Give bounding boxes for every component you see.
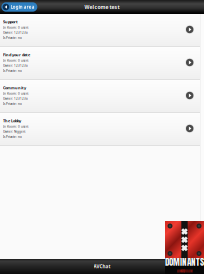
staticText: Login area (11, 4, 35, 10)
staticText: Welcome test (84, 3, 119, 10)
staticText: Owner: 123123a (3, 97, 28, 101)
staticText: Support (3, 19, 18, 24)
button[interactable]: The Lobby (0, 113, 200, 146)
button[interactable]: Find your date (0, 47, 200, 80)
staticText: In Room: 0 users (3, 59, 28, 63)
button[interactable]: Support (0, 14, 200, 47)
staticText: In Room: 0 users (3, 92, 28, 96)
staticText: In Room: 0 users (3, 125, 28, 129)
staticText: DOMINANTS (165, 255, 204, 269)
staticText: AVChat (93, 263, 110, 270)
button[interactable]: Community (0, 80, 200, 113)
staticText: The Lobby (3, 118, 21, 123)
staticText: In Room: 0 users (3, 26, 28, 30)
staticText: Owner: 123123a (3, 31, 28, 35)
staticText: Is Private: no (3, 36, 22, 40)
staticText: AMSTERDAM (177, 269, 192, 273)
staticText: Owner: Niggers (3, 130, 25, 134)
staticText: Is Private: no (3, 135, 22, 139)
staticText: Owner: 123123a (3, 64, 28, 68)
button[interactable]: Login area (1, 2, 37, 12)
staticText: Is Private: no (3, 69, 22, 73)
staticText: Find your date (3, 52, 30, 57)
staticText: Is Private: no (3, 102, 22, 106)
staticText: Community (3, 85, 26, 90)
